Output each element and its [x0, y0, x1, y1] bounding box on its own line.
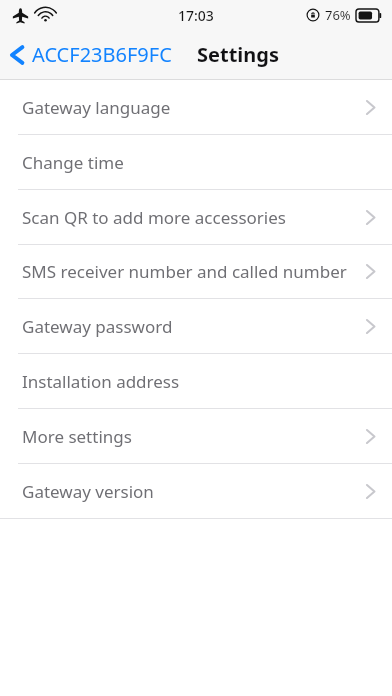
staticText: Settings — [197, 41, 279, 68]
staticText: Installation address — [22, 370, 347, 393]
button[interactable]: SMS receiver number and called number — [0, 245, 392, 298]
button[interactable]: Gateway password — [0, 299, 392, 353]
button[interactable]: Scan QR to add more accessories — [0, 190, 392, 244]
button[interactable]: Change time — [0, 135, 392, 189]
staticText: Change time — [22, 151, 347, 174]
staticText: SMS receiver number and called number — [22, 260, 347, 283]
button[interactable]: Gateway version — [0, 464, 392, 518]
staticText: Gateway version — [22, 480, 347, 503]
staticText: 76% — [325, 6, 351, 24]
other: Back — [8, 42, 26, 68]
button[interactable]: Installation address — [0, 354, 392, 408]
staticText: More settings — [22, 425, 347, 448]
staticText: 17:03 — [178, 6, 214, 25]
staticText: ACCF23B6F9FC — [32, 41, 172, 68]
button[interactable]: Back — [0, 35, 180, 74]
button[interactable]: Gateway language — [0, 80, 392, 134]
staticText: Gateway language — [22, 96, 347, 119]
staticText: Gateway password — [22, 315, 347, 338]
staticText: Scan QR to add more accessories — [22, 206, 347, 229]
button[interactable]: More settings — [0, 409, 392, 463]
